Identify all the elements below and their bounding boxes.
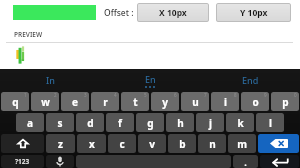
- button[interactable]: Enter: [260, 155, 299, 168]
- staticText: s: [57, 116, 63, 130]
- button[interactable]: y: [151, 92, 179, 111]
- button[interactable]: n: [198, 134, 226, 153]
- button[interactable]: In: [0, 69, 100, 91]
- button[interactable]: t: [121, 92, 149, 111]
- staticText: i: [224, 95, 227, 109]
- staticText: n: [209, 137, 216, 151]
- staticText: 8: [234, 92, 237, 98]
- button[interactable]: d: [76, 113, 104, 132]
- staticText: m: [237, 137, 247, 151]
- staticText: w: [41, 95, 50, 109]
- button[interactable]: x: [77, 134, 106, 153]
- button[interactable]: c: [108, 134, 136, 153]
- button[interactable]: u: [181, 92, 209, 111]
- button[interactable]: z: [46, 134, 75, 153]
- staticText: r: [103, 95, 108, 109]
- button[interactable]: m: [228, 134, 256, 153]
- button[interactable]: Y 10px: [216, 3, 291, 22]
- button[interactable]: b: [168, 134, 196, 153]
- button[interactable]: .: [233, 155, 258, 168]
- staticText: z: [58, 137, 63, 151]
- staticText: f: [118, 116, 122, 130]
- button[interactable]: En: [100, 69, 200, 91]
- staticText: Y 10px: [240, 7, 268, 19]
- staticText: 3: [84, 92, 87, 98]
- staticText: v: [149, 137, 155, 151]
- staticText: X 10px: [159, 7, 187, 19]
- staticText: 2: [54, 92, 57, 98]
- button[interactable]: a: [16, 113, 44, 132]
- button[interactable]: w: [31, 92, 59, 111]
- staticText: x: [89, 137, 95, 151]
- button[interactable]: g: [136, 113, 164, 132]
- button[interactable]: Backspace: [258, 134, 299, 153]
- button[interactable]: l: [256, 113, 284, 132]
- button[interactable]: p: [271, 92, 299, 111]
- staticText: 7: [204, 92, 207, 98]
- staticText: PREVIEW: [14, 30, 43, 39]
- staticText: d: [87, 116, 94, 130]
- staticText: 6: [174, 92, 177, 98]
- button[interactable]: h: [166, 113, 194, 132]
- staticText: y: [162, 95, 168, 109]
- staticText: 9: [264, 92, 267, 98]
- staticText: End: [242, 74, 259, 86]
- button[interactable]: End: [200, 69, 300, 91]
- staticText: t: [133, 95, 138, 109]
- staticText: k: [237, 116, 244, 130]
- staticText: a: [27, 116, 33, 130]
- button[interactable]: r: [91, 92, 119, 111]
- staticText: o: [252, 95, 259, 109]
- staticText: 4: [114, 92, 117, 98]
- staticText: j: [209, 116, 212, 130]
- staticText: 1: [24, 92, 27, 98]
- staticText: c: [119, 137, 125, 151]
- staticText: q: [12, 95, 19, 109]
- staticText: h: [177, 116, 184, 130]
- button[interactable]: s: [46, 113, 74, 132]
- button[interactable]: j: [196, 113, 224, 132]
- staticText: 5: [144, 92, 147, 98]
- staticText: Offset :: [104, 7, 134, 19]
- button[interactable]: X 10px: [137, 3, 209, 22]
- button[interactable]: Voice input: [46, 155, 74, 168]
- staticText: 0: [294, 92, 297, 98]
- staticText: In: [46, 74, 55, 86]
- button[interactable]: v: [138, 134, 166, 153]
- staticText: u: [192, 95, 199, 109]
- staticText: .: [244, 156, 247, 168]
- staticText: g: [147, 116, 154, 130]
- staticText: e: [72, 95, 78, 109]
- button[interactable]: Shift: [1, 134, 44, 153]
- staticText: En: [145, 73, 156, 85]
- button[interactable]: ?123: [1, 155, 44, 168]
- button[interactable]: i: [211, 92, 239, 111]
- button[interactable]: k: [226, 113, 254, 132]
- staticText: p: [282, 95, 289, 109]
- staticText: l: [269, 116, 272, 130]
- staticText: ?123: [15, 157, 30, 166]
- button[interactable]: e: [61, 92, 89, 111]
- button[interactable]: o: [241, 92, 269, 111]
- staticText: b: [179, 137, 186, 151]
- button[interactable]: q: [1, 92, 29, 111]
- button[interactable]: f: [106, 113, 134, 132]
